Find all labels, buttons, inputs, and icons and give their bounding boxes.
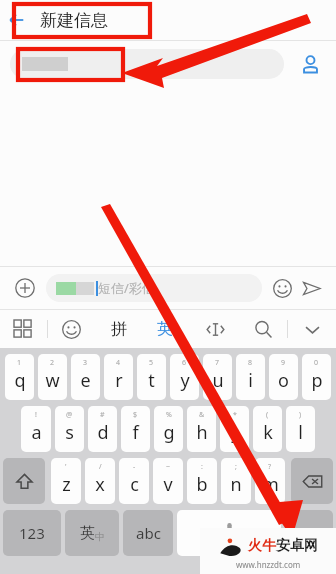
- button[interactable]: ?: [255, 458, 285, 504]
- staticText: ~: [166, 462, 171, 472]
- button[interactable]: !: [21, 406, 51, 452]
- staticText: 4: [116, 358, 121, 368]
- staticText: s: [65, 420, 74, 445]
- button[interactable]: 123: [3, 510, 61, 556]
- button[interactable]: Send: [296, 273, 326, 303]
- button[interactable]: Back: [0, 3, 34, 37]
- button[interactable]: 6: [170, 354, 199, 400]
- button[interactable]: 8: [236, 354, 265, 400]
- staticText: 2: [50, 358, 55, 368]
- button[interactable]: Emoji: [268, 274, 296, 302]
- staticText: www.hnzzdt.com: [236, 559, 301, 570]
- staticText: *: [233, 410, 237, 420]
- staticText: 火牛: [248, 537, 276, 555]
- button[interactable]: %: [154, 406, 183, 452]
- button[interactable]: 1: [5, 354, 34, 400]
- button[interactable]: 7: [203, 354, 232, 400]
- staticText: -: [133, 462, 136, 472]
- staticText: 新建信息: [40, 10, 108, 31]
- button[interactable]: [10, 49, 284, 79]
- button[interactable]: @: [55, 406, 84, 452]
- staticText: &: [199, 410, 205, 420]
- button[interactable]: -: [119, 458, 149, 504]
- staticText: 3: [83, 358, 88, 368]
- staticText: e: [80, 368, 91, 393]
- button[interactable]: ): [286, 406, 315, 452]
- staticText: /: [99, 462, 102, 472]
- button[interactable]: ~: [153, 458, 183, 504]
- staticText: %: [166, 410, 172, 420]
- staticText: q: [14, 368, 26, 393]
- staticText: 英: [157, 319, 173, 339]
- button[interactable]: /: [85, 458, 115, 504]
- staticText: a: [31, 420, 42, 445]
- button[interactable]: Collapse keyboard: [288, 310, 336, 348]
- staticText: k: [263, 420, 273, 445]
- button[interactable]: Search: [239, 310, 287, 348]
- button[interactable]: 英: [143, 310, 191, 348]
- staticText: $: [133, 410, 138, 420]
- button[interactable]: Space: [177, 510, 281, 556]
- staticText: 0: [314, 358, 319, 368]
- staticText: :: [201, 462, 203, 472]
- button[interactable]: Cursor: [191, 310, 239, 348]
- button[interactable]: 0: [302, 354, 331, 400]
- button[interactable]: Apps: [0, 310, 47, 348]
- staticText: w: [45, 368, 60, 393]
- staticText: ;: [235, 462, 237, 472]
- staticText: f: [132, 420, 139, 445]
- staticText: y: [180, 368, 190, 393]
- staticText: ): [299, 410, 302, 420]
- button[interactable]: 拼: [95, 310, 143, 348]
- staticText: 英: [80, 524, 95, 543]
- button[interactable]: 3: [71, 354, 100, 400]
- staticText: b: [196, 472, 208, 497]
- staticText: !: [35, 410, 37, 420]
- staticText: x: [95, 472, 105, 497]
- button[interactable]: $: [121, 406, 150, 452]
- staticText: abc: [136, 523, 161, 543]
- staticText: 123: [19, 523, 45, 543]
- staticText: h: [196, 420, 208, 445]
- button[interactable]: 英: [65, 510, 119, 556]
- staticText: 短信/彩信: [98, 279, 155, 297]
- staticText: i: [248, 368, 253, 393]
- staticText: 安卓网: [276, 537, 318, 555]
- button[interactable]: Shift: [3, 458, 45, 504]
- staticText: o: [278, 368, 289, 393]
- staticText: n: [230, 472, 242, 497]
- staticText: 5: [149, 358, 154, 368]
- staticText: 拼: [111, 319, 127, 339]
- button[interactable]: &: [187, 406, 216, 452]
- button[interactable]: ;: [221, 458, 251, 504]
- staticText: t: [148, 368, 155, 393]
- staticText: ': [65, 462, 67, 472]
- button[interactable]: Add attachment: [10, 273, 40, 303]
- button[interactable]: 短信/彩信: [46, 274, 262, 302]
- staticText: 8: [248, 358, 253, 368]
- button[interactable]: 2: [38, 354, 67, 400]
- staticText: #: [100, 410, 105, 420]
- button[interactable]: Pick contact: [294, 48, 326, 80]
- button[interactable]: *: [220, 406, 249, 452]
- staticText: v: [163, 472, 173, 497]
- staticText: m: [262, 472, 279, 497]
- button[interactable]: 5: [137, 354, 166, 400]
- button[interactable]: 9: [269, 354, 298, 400]
- staticText: z: [62, 472, 71, 497]
- button[interactable]: #: [88, 406, 117, 452]
- button[interactable]: Backspace: [291, 458, 333, 504]
- staticText: d: [97, 420, 109, 445]
- staticText: c: [130, 472, 139, 497]
- staticText: p: [311, 368, 323, 393]
- button[interactable]: :: [187, 458, 217, 504]
- button[interactable]: Emoji panel: [48, 310, 95, 348]
- button[interactable]: ': [51, 458, 81, 504]
- button[interactable]: abc: [123, 510, 173, 556]
- button[interactable]: 4: [104, 354, 133, 400]
- button[interactable]: (: [253, 406, 282, 452]
- staticText: ?: [268, 462, 272, 472]
- staticText: 9: [281, 358, 286, 368]
- staticText: (: [266, 410, 269, 420]
- button[interactable]: [285, 510, 333, 556]
